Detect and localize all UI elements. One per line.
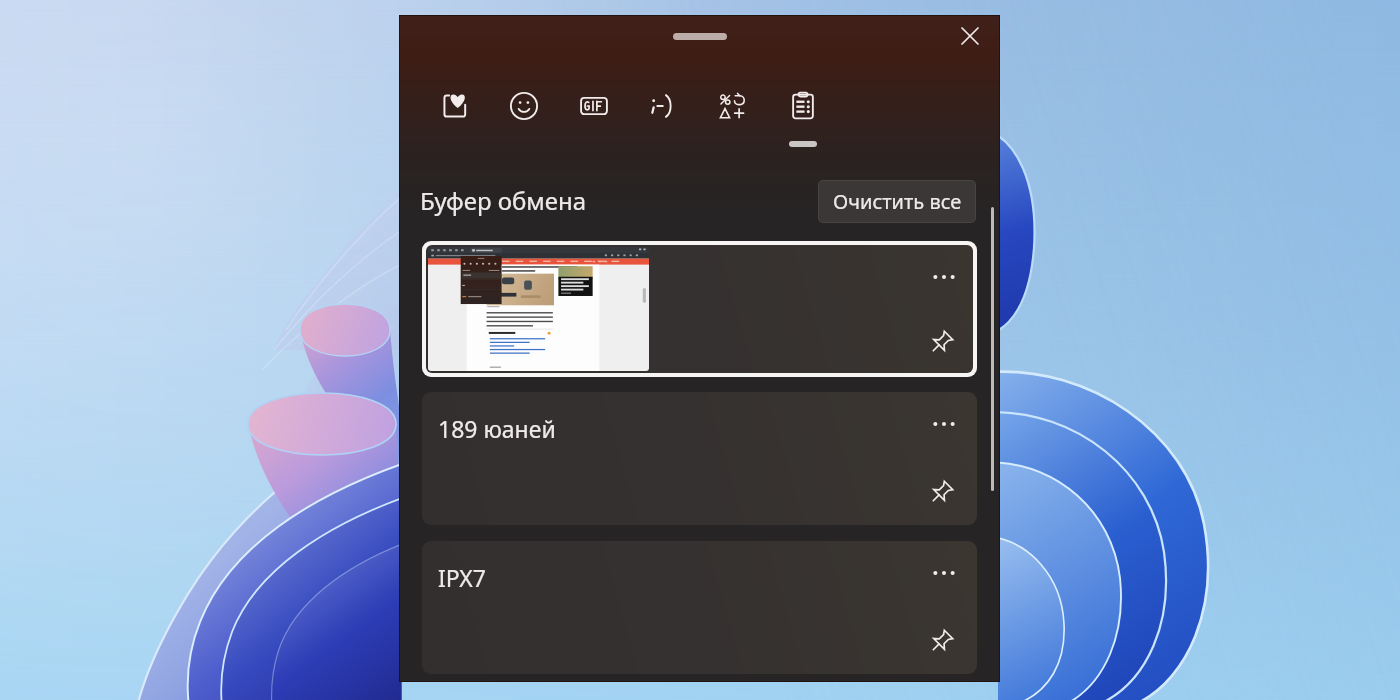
staticText: Очистить все — [833, 188, 962, 215]
button[interactable]: Move panel — [663, 21, 737, 43]
button[interactable]: More options — [926, 555, 962, 591]
staticText: IPX7 — [438, 562, 486, 593]
staticText: 189 юаней — [438, 413, 556, 444]
button[interactable]: Emoji — [501, 90, 547, 148]
button[interactable]: 189 юаней — [422, 392, 977, 525]
button[interactable]: GIF — [571, 90, 617, 148]
button[interactable]: Kaomoji — [639, 90, 685, 148]
button[interactable]: More options — [426, 245, 973, 373]
button[interactable]: IPX7 — [422, 541, 977, 674]
button[interactable]: Symbols — [710, 90, 756, 148]
button[interactable]: Close — [955, 21, 985, 51]
button[interactable]: More options — [926, 259, 962, 295]
button[interactable]: Pin item — [923, 324, 960, 361]
button[interactable]: Pin item — [923, 474, 960, 511]
button[interactable]: Recent — [433, 90, 479, 148]
staticText: Буфер обмена — [420, 184, 587, 217]
button[interactable]: Clipboard — [780, 90, 826, 148]
button[interactable]: Pin item — [923, 623, 960, 660]
button[interactable]: More options — [926, 406, 962, 442]
button[interactable]: Очистить все — [818, 180, 976, 223]
